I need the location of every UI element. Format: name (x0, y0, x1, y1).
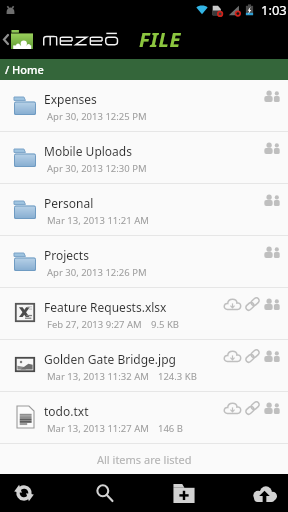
button[interactable]: Expenses (0, 80, 288, 132)
button[interactable]: Sync to cloud (222, 347, 242, 365)
button[interactable]: Golden Gate Bridge.jpg (0, 340, 288, 392)
button[interactable]: Sync to cloud (222, 399, 242, 417)
button[interactable]: Refresh (0, 474, 48, 512)
button[interactable]: todo.txt (0, 392, 288, 444)
button[interactable]: Share (262, 347, 282, 365)
button[interactable]: Share (262, 191, 282, 209)
button[interactable]: Personal (0, 184, 288, 236)
staticText: Expenses (44, 91, 97, 107)
button[interactable]: New folder (152, 474, 216, 512)
button[interactable]: Copy link (242, 295, 262, 313)
staticText: / Home (5, 62, 44, 77)
button[interactable]: / Home (0, 59, 288, 80)
button[interactable]: Share (262, 399, 282, 417)
button[interactable]: Share (262, 87, 282, 105)
staticText: Feb 27, 2013 9:27 AM (47, 318, 142, 331)
staticText: Personal (44, 195, 94, 211)
staticText: Mar 13, 2013 11:32 AM (47, 370, 149, 383)
button[interactable]: Search (72, 474, 136, 512)
staticText: Mar 13, 2013 11:21 AM (47, 214, 149, 227)
staticText: 9.5 KB (151, 318, 179, 331)
staticText: todo.txt (44, 403, 89, 419)
staticText: 1:03 (261, 1, 287, 19)
staticText: Golden Gate Bridge.jpg (44, 351, 176, 367)
button[interactable]: Upload (232, 474, 288, 512)
button[interactable]: Copy link (242, 347, 262, 365)
button[interactable]: Share (262, 139, 282, 157)
button[interactable]: Feature Requests.xlsx (0, 288, 288, 340)
staticText: 146 B (158, 422, 183, 435)
button[interactable]: Up (0, 19, 38, 59)
staticText: Feature Requests.xlsx (44, 299, 167, 315)
button[interactable]: Mobile Uploads (0, 132, 288, 184)
button[interactable]: Projects (0, 236, 288, 288)
button[interactable]: Share (262, 243, 282, 261)
staticText: All items are listed (97, 452, 192, 467)
button[interactable]: Sync to cloud (222, 295, 242, 313)
staticText: Apr 30, 2013 12:25 PM (47, 110, 147, 123)
staticText: FILE (139, 26, 181, 53)
button[interactable]: Copy link (242, 399, 262, 417)
staticText: Mar 13, 2013 11:27 AM (47, 422, 149, 435)
staticText: Apr 30, 2013 12:26 PM (47, 266, 147, 279)
staticText: 124.3 KB (158, 370, 197, 383)
staticText: Apr 30, 2013 12:30 PM (47, 162, 147, 175)
staticText: Mobile Uploads (44, 143, 132, 159)
button[interactable]: Share (262, 295, 282, 313)
staticText: Projects (44, 247, 89, 263)
